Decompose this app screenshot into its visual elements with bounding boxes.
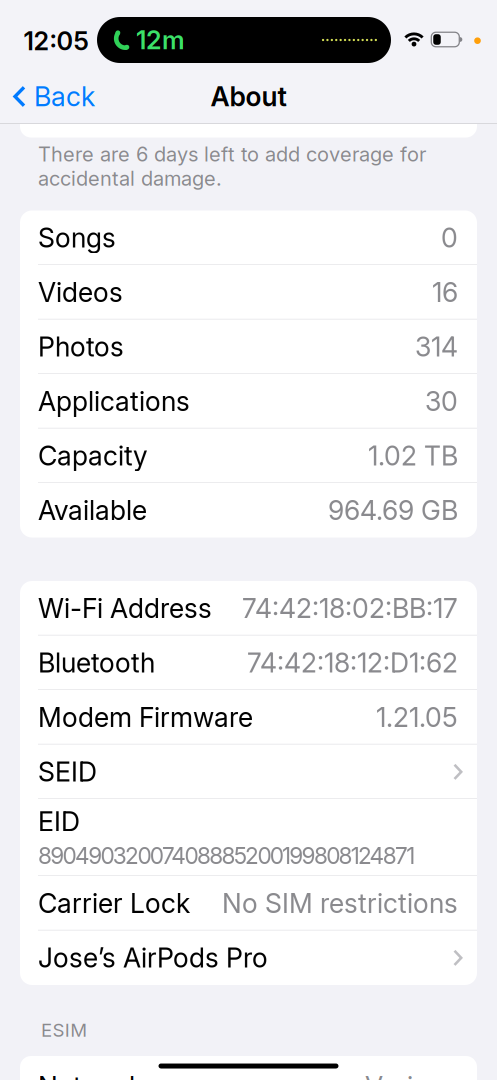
staticText: 12m [136,25,185,55]
button[interactable]: Back [13,81,95,112]
staticText: Bluetooth [38,647,155,678]
staticText: Carrier Lock [38,887,190,919]
staticText: 74:42:18:12:D1:62 [247,647,458,678]
staticText: Photos [38,331,124,362]
staticText: Capacity [38,440,148,471]
staticText: 89049032007408885200199808124871 [38,842,415,869]
staticText: No SIM restrictions [222,887,458,919]
staticText: Wi-Fi Address [38,592,212,624]
staticText: Jose’s AirPods Pro [38,942,268,973]
staticText: Videos [38,276,123,308]
staticText: 16 [432,276,458,308]
staticText: About [210,81,286,112]
staticText: Back [34,81,95,112]
staticText: 1.21.05 [376,701,458,733]
button[interactable]: Bluetooth [20,635,477,690]
staticText: Verizon [365,1070,458,1080]
button[interactable]: Videos [20,265,477,319]
staticText: 74:42:18:02:BB:17 [242,592,458,624]
staticText: There are 6 days left to add coverage fo… [38,142,426,166]
staticText: 30 [425,385,458,417]
button[interactable]: Available [20,483,477,537]
button[interactable]: Capacity [20,428,477,483]
staticText: ESIM [41,1019,87,1041]
button[interactable]: Applications [20,374,477,428]
staticText: 964.69 GB [328,494,458,526]
staticText: 0 [441,222,458,253]
button[interactable]: Network [20,1056,477,1080]
staticText: SEID [38,756,97,787]
staticText: Available [38,494,147,526]
staticText: accidental damage. [38,167,222,190]
button[interactable]: Photos [20,319,477,374]
button[interactable]: Ongoing call, 12 minutes [97,17,391,63]
button[interactable]: Songs [20,210,477,265]
button[interactable]: SEID [20,744,477,799]
staticText: Applications [38,385,190,417]
button[interactable]: Wi-Fi Address [20,581,477,635]
staticText: 12:05 [23,26,88,56]
button[interactable]: Carrier Lock [20,876,477,930]
button[interactable]: Jose’s AirPods Pro [20,930,477,985]
staticText: EID [38,806,80,837]
staticText: 314 [415,331,458,362]
staticText: 1.02 TB [368,440,458,471]
button[interactable]: Modem Firmware [20,690,477,744]
staticText: Network [38,1070,143,1080]
staticText: Songs [38,222,116,253]
button[interactable]: EID [20,799,477,876]
staticText: Modem Firmware [38,701,253,733]
